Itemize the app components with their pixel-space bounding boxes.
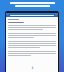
button[interactable]: Back [7,14,9,16]
button[interactable]: App bar [6,13,58,17]
button[interactable]: More options [55,14,57,16]
button[interactable]: Download [31,66,34,69]
